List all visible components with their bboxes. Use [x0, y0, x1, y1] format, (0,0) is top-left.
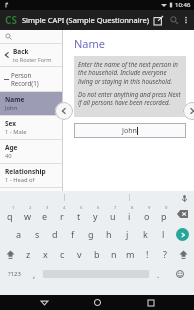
button[interactable]: 8 [121, 204, 138, 224]
button[interactable]: Person Record(1) [0, 67, 62, 91]
button[interactable]: n [105, 244, 122, 264]
button[interactable]: . [149, 264, 167, 284]
staticText: o [144, 210, 150, 222]
staticText: 0 [165, 205, 168, 211]
staticText: n [111, 248, 117, 260]
staticText: m [126, 248, 135, 260]
staticText: k [143, 228, 148, 240]
button[interactable]: Enter [172, 224, 193, 244]
staticText: Age [5, 143, 18, 152]
button[interactable]: John [74, 123, 186, 138]
staticText: j [126, 228, 129, 240]
button[interactable]: v [71, 244, 88, 264]
staticText: 2 [29, 205, 32, 211]
button[interactable]: ? [156, 244, 173, 264]
staticText: a [16, 228, 22, 240]
staticText: z [26, 248, 31, 260]
button[interactable]: Home [87, 295, 107, 310]
staticText: h [106, 228, 112, 240]
staticText: x [43, 248, 48, 260]
button[interactable]: 1 [1, 204, 19, 224]
button[interactable]: Search [166, 12, 182, 28]
button[interactable]: j [118, 224, 136, 244]
staticText: s [35, 228, 40, 240]
button[interactable]: 6 [87, 204, 104, 224]
staticText: ? [163, 248, 167, 260]
button[interactable]: Search [5, 33, 12, 40]
staticText: q [7, 210, 13, 222]
staticText: y [93, 210, 98, 222]
staticText: w [24, 210, 32, 222]
staticText: 10:46 [175, 1, 191, 9]
button[interactable]: f [64, 224, 82, 244]
button[interactable]: Open in new [150, 12, 166, 28]
staticText: Enter the name of the next person in the… [78, 60, 182, 85]
staticText: 1 - Male [5, 128, 27, 136]
button[interactable]: Back [0, 44, 62, 66]
button[interactable]: More options [182, 13, 190, 27]
staticText: f [71, 228, 75, 240]
staticText: t [77, 210, 81, 222]
button[interactable]: ?123 [2, 264, 26, 284]
button[interactable]: h [100, 224, 118, 244]
button[interactable]: 2 [19, 204, 36, 224]
button[interactable]: 7 [104, 204, 121, 224]
staticText: 1 [12, 205, 15, 211]
button[interactable]: Voice input [179, 193, 189, 203]
staticText: 5 [80, 205, 83, 211]
button[interactable]: b [88, 244, 105, 264]
staticText: , [33, 269, 36, 280]
staticText: 6 [97, 205, 100, 211]
staticText: Sex [5, 119, 17, 128]
button[interactable]: k [136, 224, 154, 244]
button[interactable]: c [54, 244, 71, 264]
button[interactable]: 4 [53, 204, 70, 224]
button[interactable]: Name [0, 92, 62, 115]
button[interactable]: 0 [155, 204, 172, 224]
button[interactable]: Emoji [167, 264, 192, 284]
button[interactable]: Backspace [172, 204, 193, 224]
button[interactable]: m [122, 244, 139, 264]
staticText: 9 [148, 205, 151, 211]
button[interactable]: l [154, 224, 172, 244]
staticText: d [52, 228, 58, 240]
button[interactable]: Sex [0, 116, 62, 139]
button[interactable]: x [37, 244, 54, 264]
button[interactable]: g [82, 224, 100, 244]
staticText: ! [146, 248, 149, 260]
button[interactable]: 3 [36, 204, 53, 224]
staticText: v [77, 248, 82, 260]
button[interactable]: Age [0, 140, 62, 163]
button[interactable]: z [20, 244, 37, 264]
button[interactable]: ! [139, 244, 156, 264]
staticText: 4 [63, 205, 66, 211]
button[interactable]: , [26, 264, 43, 284]
staticText: Simple CAPI (Sample Questionnaire) [22, 15, 150, 25]
button[interactable]: Previous [55, 102, 73, 120]
staticText: l [162, 228, 165, 240]
button[interactable]: Back [34, 295, 54, 310]
button[interactable]: Recents [141, 295, 161, 310]
staticText: 8 [131, 205, 134, 211]
staticText: Relationship [5, 167, 46, 176]
staticText: g [88, 228, 94, 240]
staticText: 3 [46, 205, 49, 211]
button[interactable]: s [28, 224, 46, 244]
button[interactable]: Next [183, 102, 194, 120]
button[interactable]: Relationship [0, 164, 62, 187]
staticText: Name [5, 95, 25, 104]
button[interactable]: 9 [138, 204, 155, 224]
button[interactable]: Shift [173, 244, 193, 264]
button[interactable]: a [10, 224, 28, 244]
button[interactable]: 5 [70, 204, 87, 224]
button[interactable]: d [46, 224, 64, 244]
button[interactable]: Shift [1, 244, 20, 264]
staticText: 7 [114, 205, 117, 211]
staticText: c [60, 248, 65, 260]
staticText: 40 [5, 152, 12, 160]
staticText: Do not enter anything and press Next if … [78, 90, 182, 106]
staticText: p [161, 210, 167, 222]
staticText: ?123 [8, 270, 21, 278]
